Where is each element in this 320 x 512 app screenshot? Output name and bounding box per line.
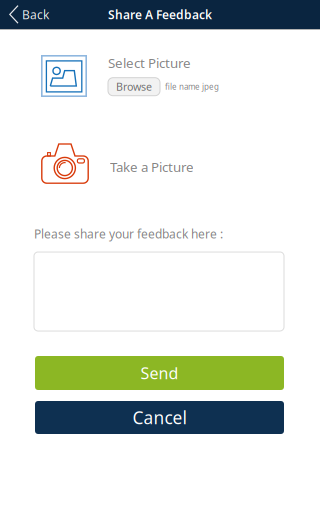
staticText: Select Picture: [108, 54, 191, 72]
staticText: Cancel: [132, 406, 186, 429]
staticText: Send: [140, 362, 178, 384]
staticText: Back: [22, 6, 49, 22]
staticText: Take a Picture: [110, 158, 194, 176]
staticText: file name jpeg: [165, 81, 219, 92]
staticText: Please share your feedback here :: [34, 226, 223, 242]
staticText: Share A Feedback: [108, 6, 212, 22]
button[interactable]: Back: [0, 0, 59, 29]
button[interactable]: Cancel: [35, 401, 284, 434]
button[interactable]: Browse: [108, 78, 160, 96]
button[interactable]: Send: [35, 356, 284, 390]
staticText: Browse: [116, 80, 152, 94]
